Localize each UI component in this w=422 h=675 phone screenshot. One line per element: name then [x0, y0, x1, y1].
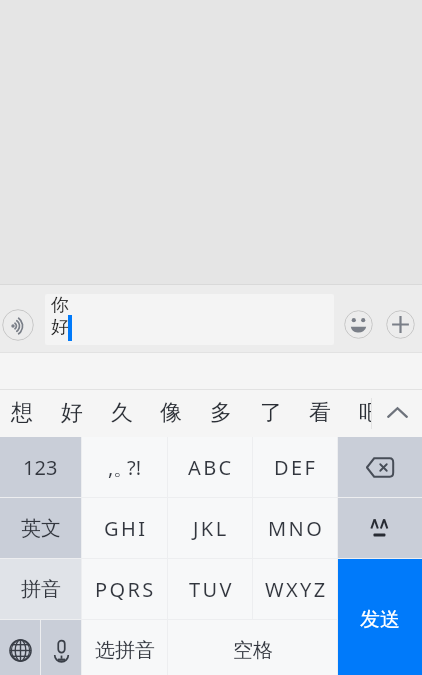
button[interactable]: 英文 [0, 498, 81, 558]
button[interactable]: MNO [253, 498, 337, 558]
button[interactable]: 好 [47, 389, 96, 437]
staticText: MNO [268, 515, 325, 542]
button[interactable]: ABC [168, 437, 252, 497]
staticText: DEF [274, 454, 318, 481]
staticText: ?! [127, 454, 142, 481]
staticText: 了 [260, 399, 282, 427]
button[interactable]: JKL [168, 498, 252, 558]
button[interactable]: 拼音 [0, 559, 81, 619]
button[interactable]: , [82, 437, 167, 497]
button[interactable]: 吧 [345, 389, 371, 437]
button[interactable]: Add attachment [386, 310, 415, 339]
button[interactable]: Emoji [344, 310, 373, 339]
staticText: 拼音 [21, 577, 61, 602]
button[interactable]: 选拼音 [82, 620, 167, 675]
button[interactable]: 空格 [168, 620, 337, 675]
button[interactable]: 久 [97, 389, 146, 437]
button[interactable]: TUV [168, 559, 252, 619]
button[interactable]: WXYZ [253, 559, 337, 619]
staticText: 英文 [21, 516, 61, 541]
staticText: 像 [160, 399, 182, 427]
staticText: 你 [51, 294, 69, 313]
button[interactable]: 了 [246, 389, 295, 437]
staticText: 久 [111, 399, 133, 427]
button[interactable]: 多 [196, 389, 245, 437]
button[interactable]: 想 [0, 389, 46, 437]
staticText: TUV [189, 576, 234, 603]
staticText: PQRS [95, 576, 156, 603]
staticText: , [108, 454, 114, 481]
button[interactable]: Voice input [41, 620, 81, 675]
button[interactable]: PQRS [82, 559, 167, 619]
staticText: JKL [193, 515, 229, 542]
staticText: ABC [188, 454, 234, 481]
button[interactable]: DEF [253, 437, 337, 497]
button[interactable]: 123 [0, 437, 81, 497]
button[interactable]: Emoticons [338, 498, 422, 558]
staticText: GHI [104, 515, 148, 542]
staticText: 想 [11, 399, 33, 427]
button[interactable]: 看 [295, 389, 344, 437]
button[interactable]: 发送 [338, 559, 422, 675]
staticText: 多 [210, 399, 232, 427]
button[interactable]: Voice input [2, 309, 34, 341]
staticText: 好 [51, 316, 69, 339]
staticText: 空格 [233, 638, 273, 663]
button[interactable]: Delete [338, 437, 422, 497]
button[interactable]: Switch input language [0, 620, 40, 675]
button[interactable]: 你 [45, 294, 334, 345]
staticText: 发送 [360, 607, 400, 632]
staticText: 看 [309, 399, 331, 427]
staticText: 123 [23, 454, 58, 481]
button[interactable]: 像 [146, 389, 195, 437]
button[interactable]: Expand candidates [372, 389, 422, 437]
staticText: 好 [61, 399, 83, 427]
staticText: WXYZ [265, 576, 328, 603]
staticText: 吧 [359, 399, 371, 427]
button[interactable]: GHI [82, 498, 167, 558]
staticText: 。 [113, 456, 133, 481]
staticText: 选拼音 [95, 638, 155, 663]
